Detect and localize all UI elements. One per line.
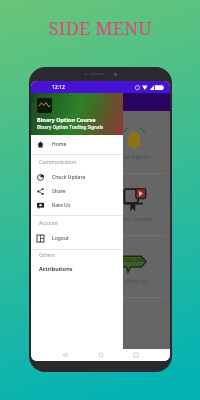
staticText: Follow Us <box>120 277 147 285</box>
staticText: FOLLOW <box>123 257 144 264</box>
staticText: Check Update <box>52 174 86 181</box>
staticText: Share <box>52 188 66 195</box>
staticText: 12:12 <box>52 84 65 91</box>
button[interactable]: Rate Us <box>31 198 123 212</box>
staticText: Home <box>52 141 67 148</box>
button[interactable]: Video Course <box>39 174 102 235</box>
button[interactable]: Check Update <box>31 170 123 184</box>
staticText: Communication <box>39 159 77 166</box>
other: Recents <box>134 353 138 357</box>
button[interactable]: FOLLOW <box>39 236 102 297</box>
staticText: Account <box>39 220 59 227</box>
button[interactable]: Attributions <box>31 261 123 275</box>
button[interactable]: Video Course <box>102 174 165 235</box>
other: Home <box>99 353 103 357</box>
staticText: Binary Option Trading Signals <box>37 124 104 130</box>
staticText: Rate Us <box>52 202 71 209</box>
staticText: Video Course <box>115 215 153 223</box>
button[interactable]: Share <box>31 184 123 198</box>
button[interactable]: Home <box>31 135 123 154</box>
button[interactable]: FOLLOW <box>102 236 165 297</box>
staticText: Logout <box>52 235 69 242</box>
staticText: Free Signals <box>54 153 88 161</box>
staticText: Attributions <box>39 265 73 272</box>
staticText: Others <box>39 252 56 259</box>
button[interactable]: Logout <box>31 231 123 245</box>
button[interactable]: Free Signals <box>39 112 102 173</box>
staticText: Video Course <box>52 215 90 223</box>
staticText: Free Signals <box>117 153 151 161</box>
staticText: SIDE MENU <box>0 15 200 40</box>
button[interactable]: Free Signals <box>102 112 165 173</box>
staticText: Binary Option Course <box>37 116 96 123</box>
other: Back <box>63 353 67 357</box>
